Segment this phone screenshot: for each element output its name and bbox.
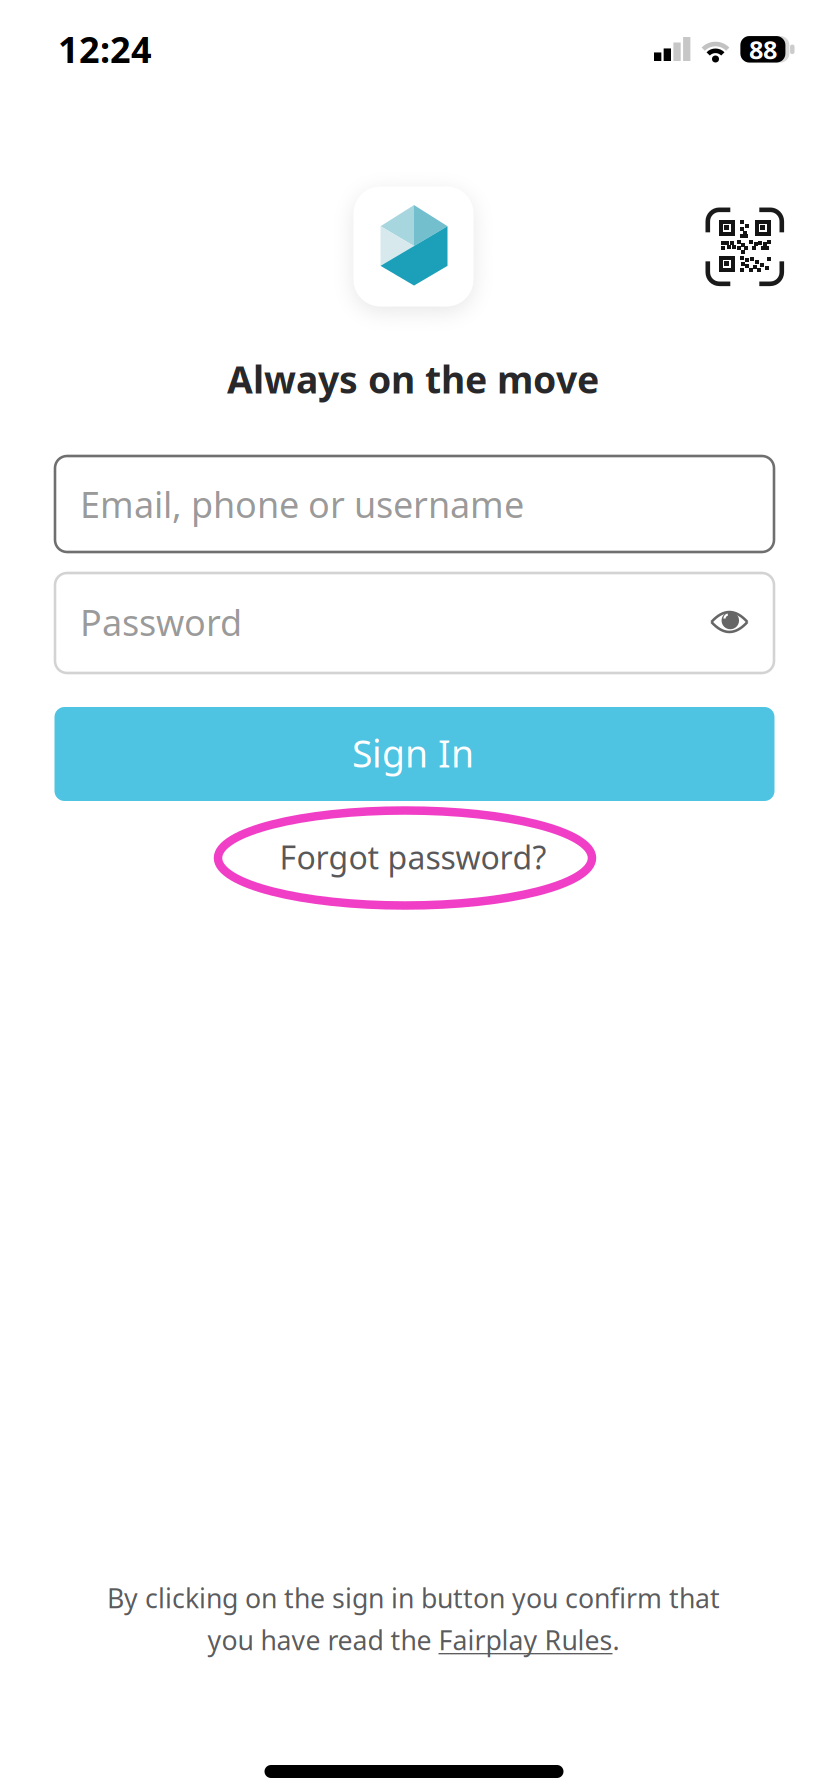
staticText: By clicking on the sign in button you co… [107,1580,720,1616]
staticText: Sign In [352,728,474,778]
staticText: you have read the Fairplay Rules. [207,1622,619,1658]
staticText: Forgot password? [279,836,546,878]
staticText: Always on the move [227,354,599,404]
staticText: 12:24 [58,25,152,73]
staticText: Email, phone or username [80,480,524,528]
staticText: 88 [749,32,777,66]
staticText: Password [80,598,242,646]
